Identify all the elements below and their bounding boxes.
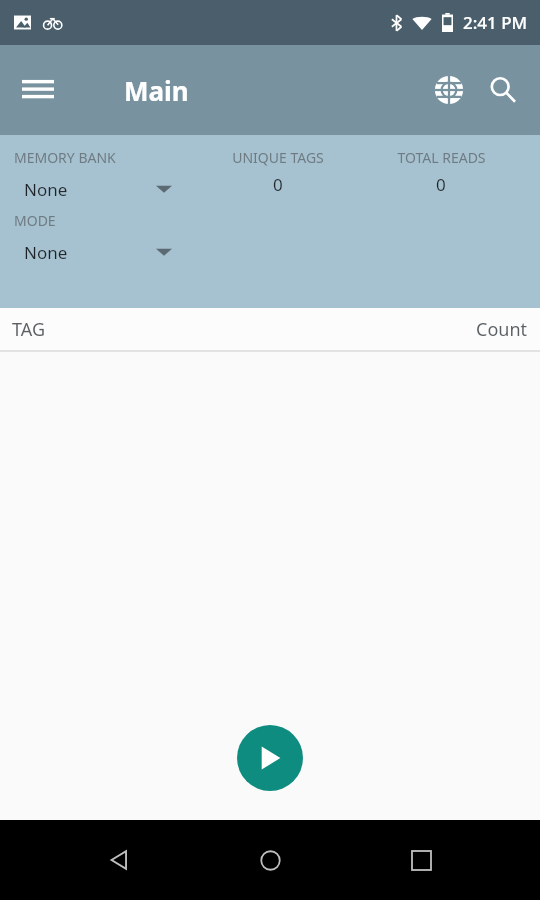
staticText: Count — [476, 317, 528, 342]
button[interactable]: Search — [476, 63, 530, 117]
staticText: 0 — [436, 173, 446, 196]
staticText: None — [24, 178, 68, 201]
staticText: UNIQUE TAGS — [232, 148, 324, 167]
button[interactable]: None — [24, 174, 184, 204]
button[interactable]: Open navigation menu — [14, 66, 62, 114]
staticText: None — [24, 241, 68, 264]
button[interactable]: Recent apps — [389, 828, 453, 892]
button[interactable]: Home — [238, 828, 302, 892]
button[interactable]: Language — [422, 63, 476, 117]
staticText: Main — [124, 73, 189, 108]
staticText: TOTAL READS — [397, 148, 486, 167]
button[interactable]: Start reading — [237, 725, 303, 791]
staticText: MEMORY BANK — [14, 148, 116, 167]
staticText: 0 — [273, 173, 283, 196]
staticText: 2:41 PM — [463, 11, 528, 34]
staticText: MODE — [14, 211, 56, 230]
staticText: TAG — [12, 317, 45, 342]
button[interactable]: Back — [87, 828, 151, 892]
button[interactable]: None — [24, 237, 184, 267]
